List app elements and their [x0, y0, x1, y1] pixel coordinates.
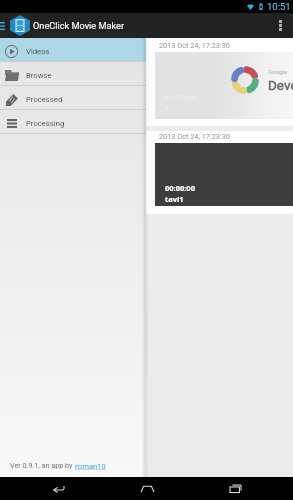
- staticText: Processing: [26, 119, 65, 128]
- staticText: 10:51: [267, 1, 291, 12]
- staticText: 2013 Oct 24, 17:23:30: [159, 132, 230, 141]
- button[interactable]: 2013 Oct 24, 17:23:30: [146, 38, 293, 126]
- button[interactable]: Videos: [0, 38, 146, 61]
- staticText: OneClick Movie Maker: [33, 20, 125, 31]
- button[interactable]: Open navigation drawer: [0, 13, 10, 38]
- button[interactable]: roman10: [75, 461, 106, 471]
- staticText: 2013 Oct 24, 17:23:30: [159, 41, 230, 50]
- button[interactable]: Processing: [0, 110, 146, 133]
- staticText: 00:00:00: [165, 183, 195, 193]
- button[interactable]: Processed: [0, 86, 146, 109]
- staticText: Google: [268, 68, 287, 75]
- staticText: 00:07:08: [165, 92, 195, 102]
- button[interactable]: More options: [270, 13, 290, 38]
- staticText: Ver 0.9.1, an app by: [10, 461, 75, 469]
- button[interactable]: Back: [28, 477, 88, 500]
- staticText: Processed: [26, 95, 63, 104]
- staticText: tavi1: [165, 194, 184, 204]
- staticText: Videos: [26, 47, 50, 56]
- staticText: Browse: [26, 71, 52, 80]
- button[interactable]: Recent apps: [205, 477, 265, 500]
- button[interactable]: Home: [117, 477, 177, 500]
- button[interactable]: 2013 Oct 24, 17:23:30: [146, 131, 293, 214]
- staticText: Developers: [268, 77, 293, 93]
- button[interactable]: Browse: [0, 62, 146, 85]
